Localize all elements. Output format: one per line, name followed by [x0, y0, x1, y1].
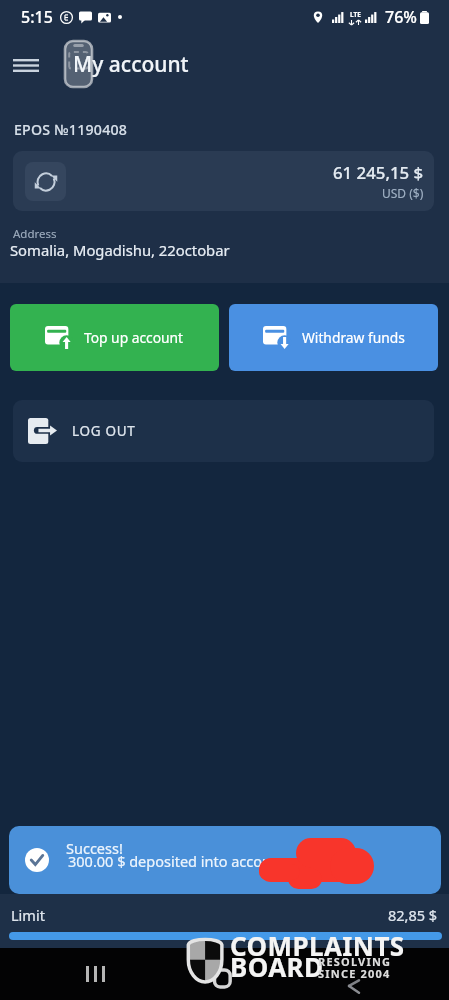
staticText: LTE — [350, 10, 361, 19]
staticText: My account — [73, 50, 189, 79]
button[interactable]: LOG OUT — [13, 400, 434, 462]
staticText: Somalia, Mogadishu, 22octobar — [10, 240, 230, 260]
staticText: Limit — [11, 905, 45, 925]
staticText: COMPLAINTS — [230, 928, 405, 963]
staticText: RESOLVING — [318, 954, 392, 969]
staticText: Success! — [66, 838, 123, 858]
staticText: Withdraw funds — [302, 328, 405, 347]
staticText: USD ($) — [382, 185, 424, 201]
button[interactable]: Menu — [2, 41, 50, 89]
button[interactable]: Refresh — [13, 151, 434, 211]
button[interactable]: Top up account — [10, 304, 219, 371]
staticText: 76% — [385, 6, 417, 28]
staticText: 61 245,15 $ — [333, 161, 424, 184]
button[interactable]: Back — [333, 966, 373, 1000]
staticText: SINCE 2004 — [318, 966, 391, 981]
staticText: Address — [13, 226, 57, 242]
staticText: 82,85 $ — [388, 905, 438, 925]
button[interactable]: Recent apps — [72, 951, 118, 997]
staticText: 5:15 — [21, 6, 53, 28]
staticText: Top up account — [84, 328, 184, 347]
button[interactable]: Refresh — [25, 162, 66, 201]
button[interactable]: Success! — [9, 826, 441, 894]
staticText: LOG OUT — [72, 422, 136, 440]
staticText: BOARD — [230, 949, 324, 984]
staticText: EPOS №1190408 — [14, 120, 128, 139]
staticText: 300.00 $ deposited into accou — [68, 851, 272, 871]
button[interactable]: Withdraw funds — [229, 304, 438, 371]
